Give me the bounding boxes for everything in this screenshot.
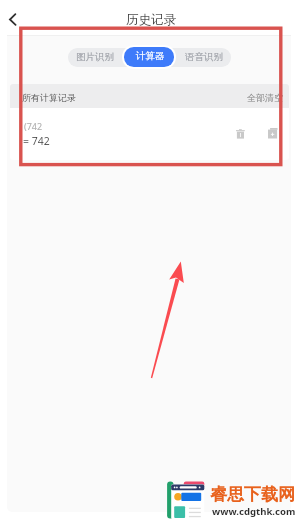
button[interactable]: Back [0,7,25,32]
button[interactable]: Copy result [263,123,282,142]
button[interactable]: 语音识别 [177,48,231,67]
staticText: = 742 [23,134,50,148]
staticText: www.cdgthk.com [212,505,296,518]
staticText: 图片识别 [76,51,114,63]
button[interactable]: 全部清空 [247,92,283,103]
button[interactable]: 图片识别 [68,48,122,67]
staticText: 睿思下载网 [210,484,295,505]
staticText: 所有计算记录 [22,92,76,103]
staticText: 计算器 [136,50,165,62]
button[interactable]: Delete record [231,125,250,144]
staticText: 历史记录 [126,12,176,28]
staticText: (742 [24,120,43,132]
button[interactable]: 计算器 [122,45,176,69]
staticText: 语音识别 [185,51,223,63]
